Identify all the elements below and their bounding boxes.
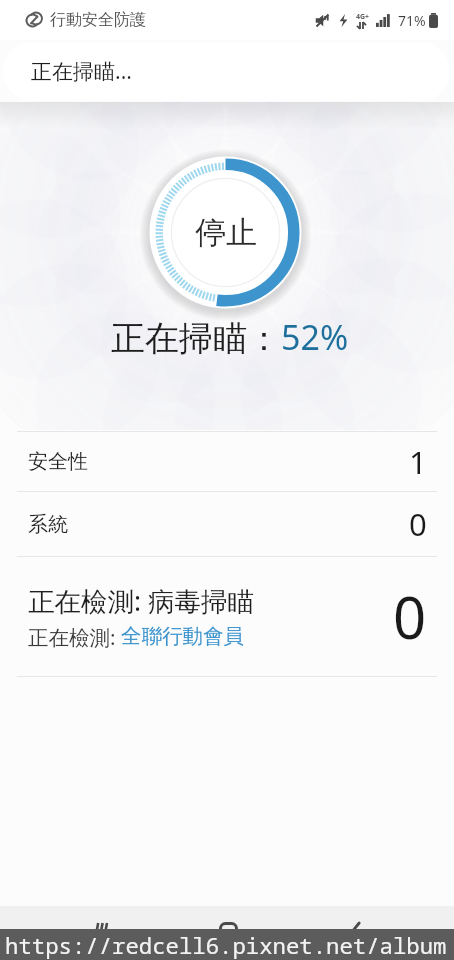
staticText: 全聯行動會員 [121, 623, 244, 649]
staticText: 正在掃瞄： [111, 317, 281, 360]
button[interactable]: Recents [58, 904, 144, 958]
button[interactable]: 正在檢測: 病毒掃瞄 [0, 557, 454, 676]
button[interactable]: 安全性 [28, 432, 427, 491]
staticText: 正在檢測: 病毒掃瞄 [28, 583, 254, 619]
staticText: 0 [393, 577, 427, 656]
button[interactable]: Home [185, 904, 271, 958]
staticText: 停止 [195, 213, 257, 252]
staticText: 4G+ [356, 12, 370, 22]
staticText: 正在掃瞄... [31, 57, 132, 86]
button[interactable]: 系統 [28, 492, 427, 556]
staticText: 系統 [28, 512, 68, 537]
staticText: 0 [409, 503, 427, 545]
staticText: 正在檢測: [28, 623, 121, 651]
staticText: 行動安全防護 [50, 10, 146, 30]
staticText: 71% [398, 11, 426, 30]
button[interactable]: Back [313, 904, 399, 958]
staticText: https://redcell6.pixnet.net/album [5, 930, 447, 960]
staticText: 1 [409, 441, 427, 483]
staticText: 安全性 [28, 449, 88, 474]
staticText: 52% [281, 314, 349, 360]
button[interactable]: 正在掃瞄... [3, 42, 450, 101]
